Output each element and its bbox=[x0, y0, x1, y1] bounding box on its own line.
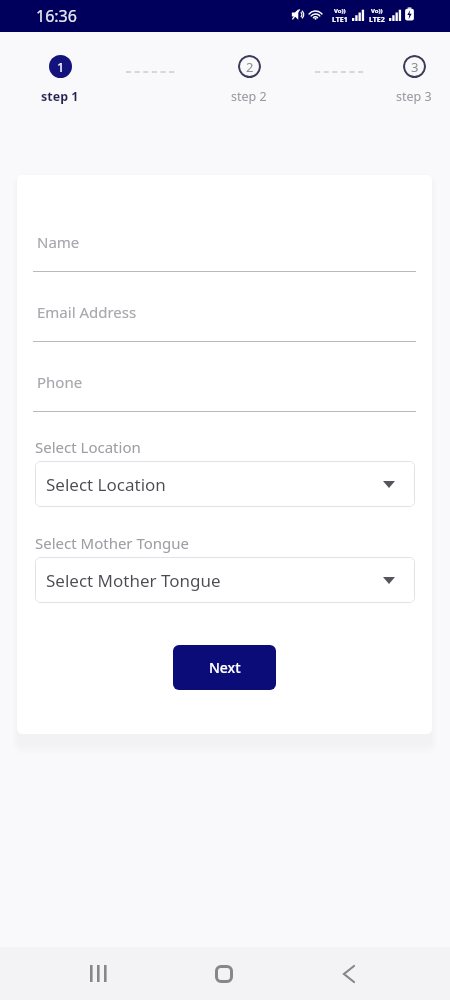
staticText: 3 bbox=[411, 58, 419, 76]
button[interactable]: Select Mother Tongue bbox=[35, 557, 415, 603]
staticText: Select Mother Tongue bbox=[46, 569, 221, 592]
button[interactable]: 3 bbox=[374, 55, 450, 105]
staticText: Next bbox=[209, 658, 241, 677]
staticText: step 1 bbox=[41, 88, 79, 105]
staticText: Vo)) bbox=[371, 7, 383, 15]
staticText: 2 bbox=[246, 58, 254, 76]
staticText: Vo)) bbox=[334, 7, 346, 15]
button[interactable]: Next bbox=[173, 645, 276, 690]
staticText: 16:36 bbox=[36, 5, 77, 27]
staticText: LTE2 bbox=[369, 15, 385, 25]
staticText: LTE1 bbox=[332, 15, 348, 25]
staticText: step 2 bbox=[231, 88, 267, 105]
button[interactable]: Email Address bbox=[33, 301, 416, 342]
staticText: Phone bbox=[37, 372, 83, 392]
button[interactable]: 1 bbox=[20, 55, 100, 105]
staticText: Name bbox=[37, 232, 80, 252]
staticText: Select Mother Tongue bbox=[35, 533, 190, 553]
staticText: Select Location bbox=[35, 437, 141, 457]
staticText: 1 bbox=[57, 58, 65, 76]
staticText: Email Address bbox=[37, 302, 137, 322]
button[interactable]: Name bbox=[33, 231, 416, 272]
button[interactable]: Recent apps bbox=[68, 947, 128, 1000]
button[interactable]: 2 bbox=[209, 55, 289, 105]
staticText: step 3 bbox=[396, 88, 432, 105]
button[interactable]: Back bbox=[319, 947, 379, 1000]
button[interactable]: Select Location bbox=[35, 461, 415, 507]
button[interactable]: Home bbox=[194, 947, 254, 1000]
button[interactable]: Phone bbox=[33, 371, 416, 412]
staticText: Select Location bbox=[46, 473, 166, 496]
